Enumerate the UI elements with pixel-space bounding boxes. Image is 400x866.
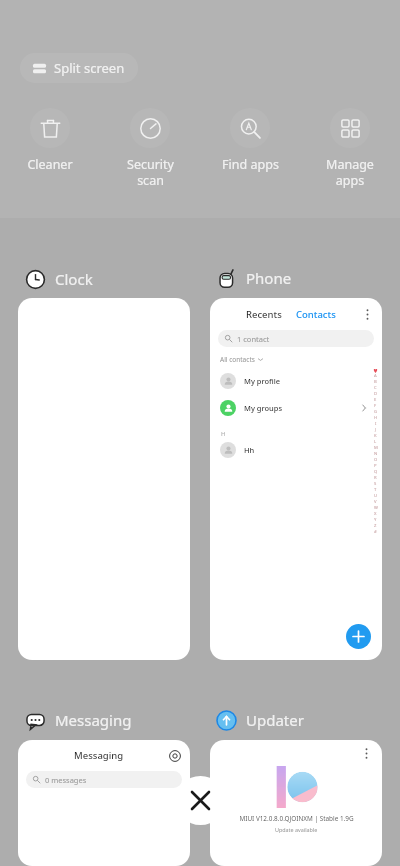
- staticText: F: [374, 403, 377, 409]
- staticText: 1 contact: [237, 334, 270, 344]
- button[interactable]: Close all: [176, 776, 225, 825]
- staticText: C: [374, 385, 377, 391]
- staticText: R: [374, 475, 377, 481]
- staticText: My profile: [244, 376, 281, 386]
- button[interactable]: Find apps: [208, 108, 292, 173]
- button[interactable]: Cleaner: [8, 108, 92, 173]
- button[interactable]: Contacts: [296, 308, 336, 321]
- staticText: Find apps: [222, 156, 279, 173]
- staticText: Phone: [246, 268, 292, 288]
- staticText: K: [374, 433, 377, 439]
- staticText: 0 messages: [45, 775, 87, 785]
- staticText: G: [374, 409, 378, 415]
- staticText: Updater: [246, 710, 304, 730]
- staticText: Q: [374, 469, 378, 475]
- staticText: H: [374, 415, 378, 421]
- staticText: I: [375, 421, 377, 427]
- button[interactable]: More options: [360, 747, 373, 760]
- button[interactable]: Recents: [210, 298, 382, 660]
- button[interactable]: Messaging: [18, 706, 142, 734]
- staticText: Clock: [55, 269, 93, 289]
- button[interactable]: Recents: [246, 308, 282, 321]
- staticText: M: [374, 445, 378, 451]
- button[interactable]: [18, 298, 190, 660]
- staticText: H: [221, 430, 226, 438]
- staticText: #: [374, 529, 377, 535]
- staticText: MIUI V12.0.8.0.QJOINXM | Stable 1.9G: [239, 814, 354, 823]
- staticText: T: [374, 487, 377, 493]
- staticText: O: [374, 457, 378, 463]
- staticText: My groups: [244, 403, 283, 413]
- button[interactable]: 0 messages: [26, 771, 182, 788]
- staticText: P: [374, 463, 377, 469]
- staticText: B: [374, 379, 377, 385]
- staticText: X: [374, 511, 377, 517]
- button[interactable]: Phone: [209, 264, 302, 292]
- staticText: Security scan: [127, 156, 174, 188]
- staticText: N: [374, 451, 378, 457]
- staticText: Messaging: [55, 710, 132, 730]
- staticText: Y: [374, 517, 377, 523]
- staticText: Z: [374, 523, 377, 529]
- staticText: Manage apps: [326, 156, 374, 188]
- staticText: A: [374, 373, 377, 379]
- button[interactable]: More options: [361, 308, 374, 321]
- staticText: Messaging: [74, 749, 124, 762]
- button[interactable]: My groups: [210, 400, 382, 416]
- staticText: E: [374, 397, 377, 403]
- button[interactable]: Security scan: [108, 108, 192, 188]
- button[interactable]: Add contact: [346, 624, 371, 649]
- button[interactable]: Settings: [169, 750, 181, 762]
- staticText: Cleaner: [27, 156, 73, 173]
- staticText: Split screen: [54, 59, 125, 77]
- button[interactable]: Clock: [18, 265, 103, 293]
- button[interactable]: Messaging: [18, 740, 190, 866]
- staticText: W: [374, 505, 378, 511]
- staticText: J: [375, 427, 377, 433]
- button[interactable]: Updater: [209, 706, 314, 734]
- button[interactable]: My profile: [210, 373, 382, 389]
- staticText: Update available: [275, 826, 318, 833]
- button[interactable]: Split screen: [20, 53, 138, 83]
- staticText: Hh: [244, 445, 255, 455]
- button[interactable]: 1 contact: [218, 330, 374, 347]
- button[interactable]: All contacts: [220, 355, 263, 364]
- staticText: U: [374, 493, 378, 499]
- button[interactable]: Manage apps: [308, 108, 392, 188]
- staticText: All contacts: [220, 355, 255, 364]
- staticText: L: [374, 439, 377, 445]
- staticText: D: [374, 391, 378, 397]
- button[interactable]: More options: [210, 740, 382, 866]
- button[interactable]: Hh: [210, 442, 382, 458]
- staticText: V: [374, 499, 377, 505]
- staticText: S: [374, 481, 377, 487]
